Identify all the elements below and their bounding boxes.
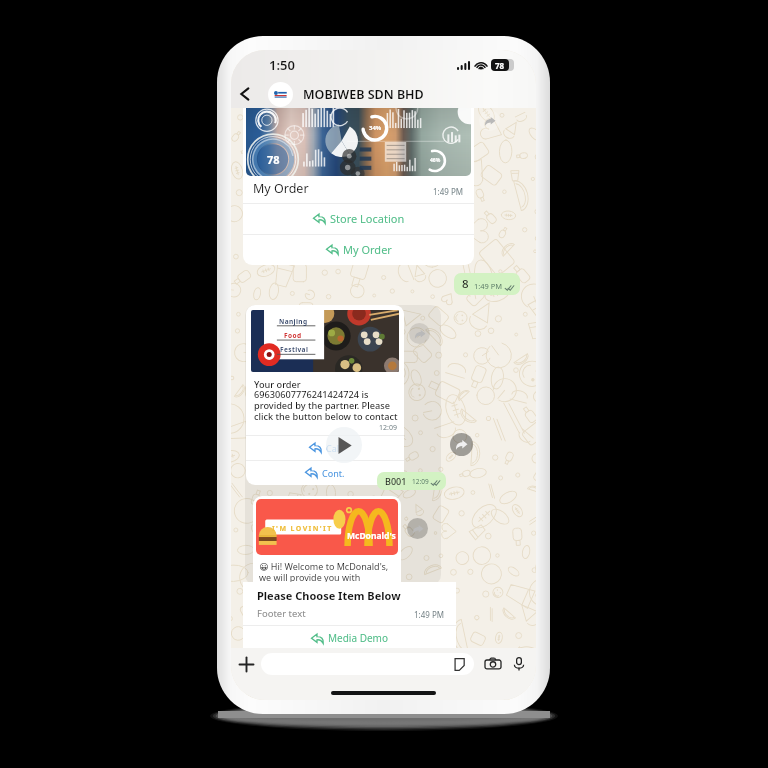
button[interactable]: Attach (231, 649, 261, 679)
button[interactable]: Cont. (246, 460, 404, 485)
button[interactable] (261, 653, 474, 675)
staticText: Festival (280, 345, 309, 354)
staticText: McDonald's (347, 530, 396, 542)
staticText: MOBIWEB SDN BHD (303, 86, 424, 103)
staticText: I'M LOVIN'IT (272, 524, 333, 534)
staticText: Store Location (330, 211, 405, 226)
button[interactable]: Forward (407, 518, 428, 539)
staticText: 😀 Hi! Welcome to McDonald's, we will pro… (259, 560, 396, 594)
staticText: Call (326, 442, 342, 454)
staticText: 12:09 (412, 477, 429, 486)
staticText: Nanjing (279, 317, 308, 326)
button[interactable]: Voice message (506, 651, 532, 677)
staticText: Food (284, 331, 302, 340)
staticText: 8 (462, 276, 469, 292)
staticText: 78 (267, 152, 280, 167)
staticText: 1:50 (269, 56, 295, 74)
staticText: Please Choose Item Below (257, 588, 401, 603)
button[interactable]: Call (246, 435, 404, 460)
staticText: 12:09 (379, 423, 397, 433)
button[interactable]: Back (231, 80, 259, 108)
staticText: My Order (253, 180, 309, 197)
button[interactable]: Store Location (243, 203, 474, 234)
staticText: 1:49 PM (474, 281, 503, 291)
staticText: Cont. (322, 467, 345, 479)
staticText: 34% (369, 124, 382, 132)
button[interactable]: Media Demo (243, 625, 456, 651)
staticText: B001 (385, 475, 407, 487)
button[interactable]: Forward (450, 433, 473, 456)
staticText: Your order 69630607776241424724 is provi… (254, 378, 400, 423)
button[interactable]: Forward (479, 110, 500, 131)
staticText: 46% (430, 157, 441, 164)
staticText: 78 (495, 60, 505, 71)
button[interactable]: Forward (409, 323, 430, 344)
staticText: Footer text (257, 607, 306, 620)
staticText: Media Demo (328, 631, 388, 645)
staticText: 1:49 PM (433, 186, 464, 197)
staticText: My Order (343, 242, 392, 257)
staticText: 1:49 PM (414, 609, 445, 620)
button[interactable]: Camera (480, 651, 506, 677)
button[interactable]: Play video (326, 427, 362, 463)
button[interactable]: My Order (243, 234, 474, 265)
